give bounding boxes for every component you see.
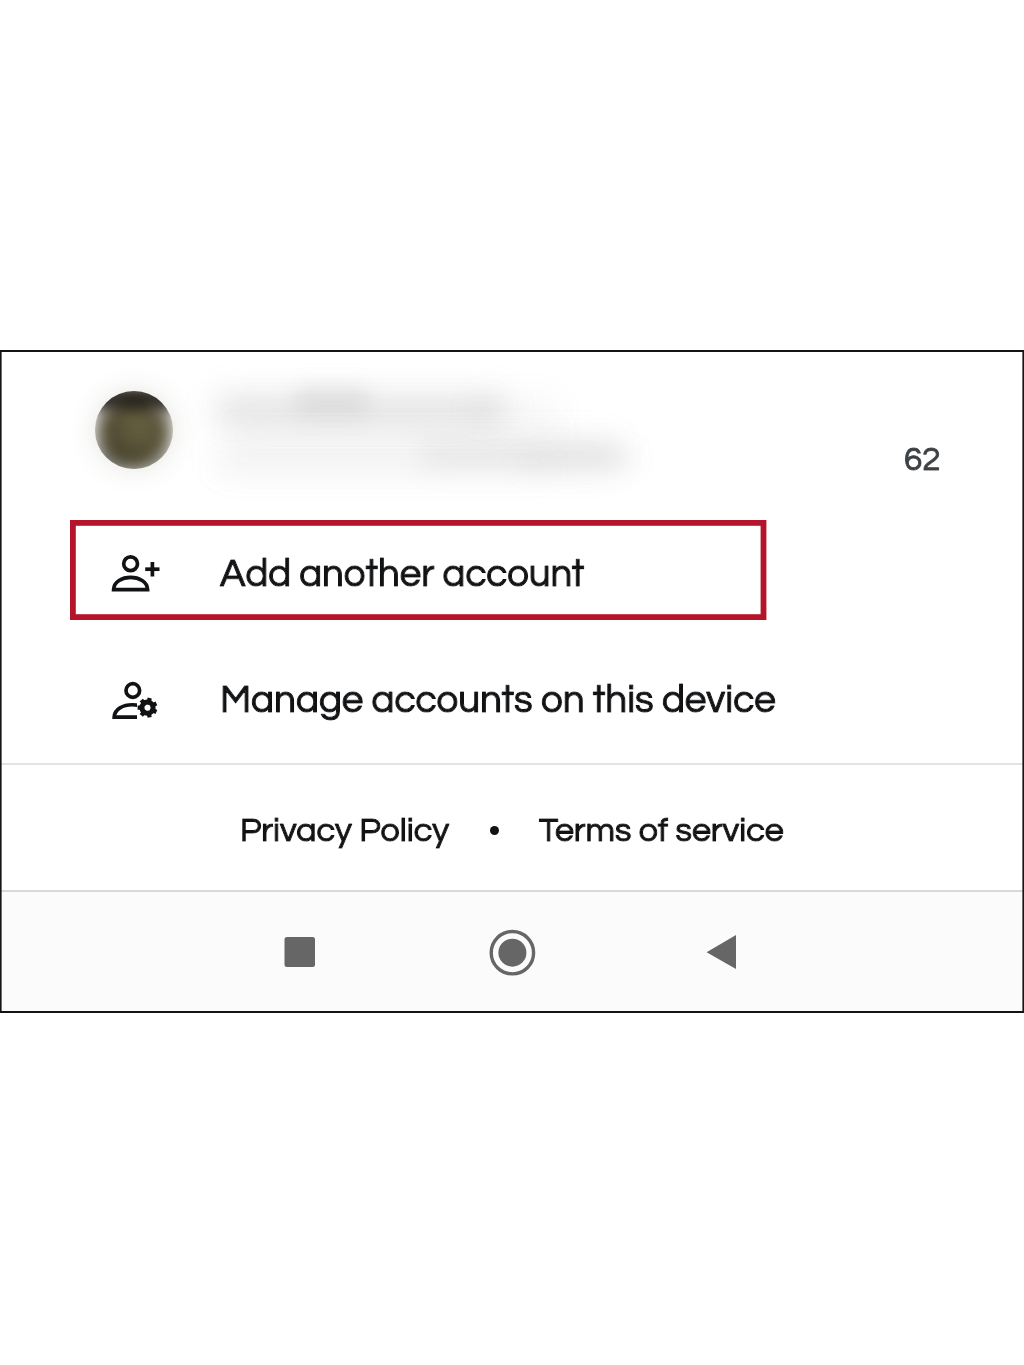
staticText: Terms of service: [539, 813, 784, 848]
staticText: 62: [904, 443, 941, 477]
staticText: Privacy Policy: [240, 813, 450, 848]
staticText: Privacy Policy: [240, 813, 450, 848]
staticText: Add another account: [220, 555, 585, 595]
staticText: Add another account: [220, 555, 585, 595]
button[interactable]: Privacy Policy: [240, 813, 450, 848]
staticText: Manage accounts on this device: [220, 680, 776, 720]
button[interactable]: Home: [452, 897, 572, 1017]
button[interactable]: Manage accounts on this device: [0, 623, 1024, 763]
button[interactable]: Add another account: [0, 522, 1024, 623]
staticText: Manage accounts on this device: [220, 680, 776, 720]
staticText: 62: [904, 443, 941, 477]
button[interactable]: Terms of service: [539, 813, 784, 848]
staticText: Terms of service: [539, 813, 784, 848]
button[interactable]: Recent apps: [240, 897, 360, 1017]
button[interactable]: Back: [647, 897, 767, 1017]
